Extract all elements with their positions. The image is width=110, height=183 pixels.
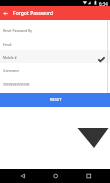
staticText: Forgot Password: [13, 10, 54, 17]
staticText: Reset Password By: [3, 28, 32, 32]
button[interactable]: Back: [0, 6, 11, 20]
button[interactable]: 99999999999999: [0, 77, 110, 90]
button[interactable]: Mobile #: [0, 50, 110, 63]
staticText: Username: [3, 68, 20, 72]
button[interactable]: Username: [0, 63, 110, 76]
staticText: 6:34: [99, 1, 108, 7]
button[interactable]: Email: [0, 37, 110, 50]
button[interactable]: Reset Password By: [0, 23, 110, 36]
button[interactable]: RESET: [0, 93, 110, 107]
button[interactable]: Home: [45, 169, 67, 183]
staticText: Email: [3, 42, 12, 46]
staticText: RESET: [50, 97, 62, 102]
button[interactable]: Back: [12, 169, 34, 183]
staticText: 99999999999999: [3, 82, 30, 86]
staticText: Mobile #: [3, 55, 17, 59]
button[interactable]: Recent apps: [78, 169, 100, 183]
